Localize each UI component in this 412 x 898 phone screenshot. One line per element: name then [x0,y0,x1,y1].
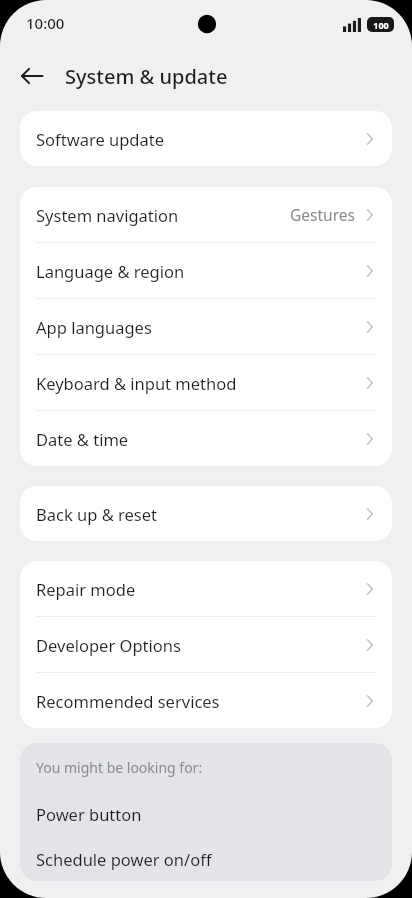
button[interactable]: Schedule power on/off [20,836,392,881]
staticText: App languages [36,316,360,338]
button[interactable]: Date & time [20,411,392,466]
staticText: Power button [36,803,142,825]
button[interactable]: Language & region [20,243,392,298]
staticText: System navigation [36,204,290,226]
staticText: Gestures [290,204,355,225]
staticText: 10:00 [26,13,65,33]
button[interactable]: Back [10,54,54,98]
staticText: System & update [65,63,228,90]
staticText: Date & time [36,428,360,450]
button[interactable]: Power button [20,791,392,836]
button[interactable]: Back up & reset [20,486,392,541]
staticText: Language & region [36,260,360,282]
staticText: Developer Options [36,634,360,656]
staticText: Back up & reset [36,503,360,525]
button[interactable]: Recommended services [20,673,392,728]
staticText: You might be looking for: [36,758,203,777]
button[interactable]: Software update [20,111,392,166]
staticText: Software update [36,128,360,150]
staticText: Keyboard & input method [36,372,360,394]
button[interactable]: System navigation [20,187,392,242]
staticText: Recommended services [36,690,360,712]
button[interactable]: Developer Options [20,617,392,672]
button[interactable]: App languages [20,299,392,354]
staticText: 100 [373,19,389,31]
staticText: Schedule power on/off [36,848,212,870]
button[interactable]: Repair mode [20,561,392,616]
staticText: Repair mode [36,578,360,600]
button[interactable]: Keyboard & input method [20,355,392,410]
